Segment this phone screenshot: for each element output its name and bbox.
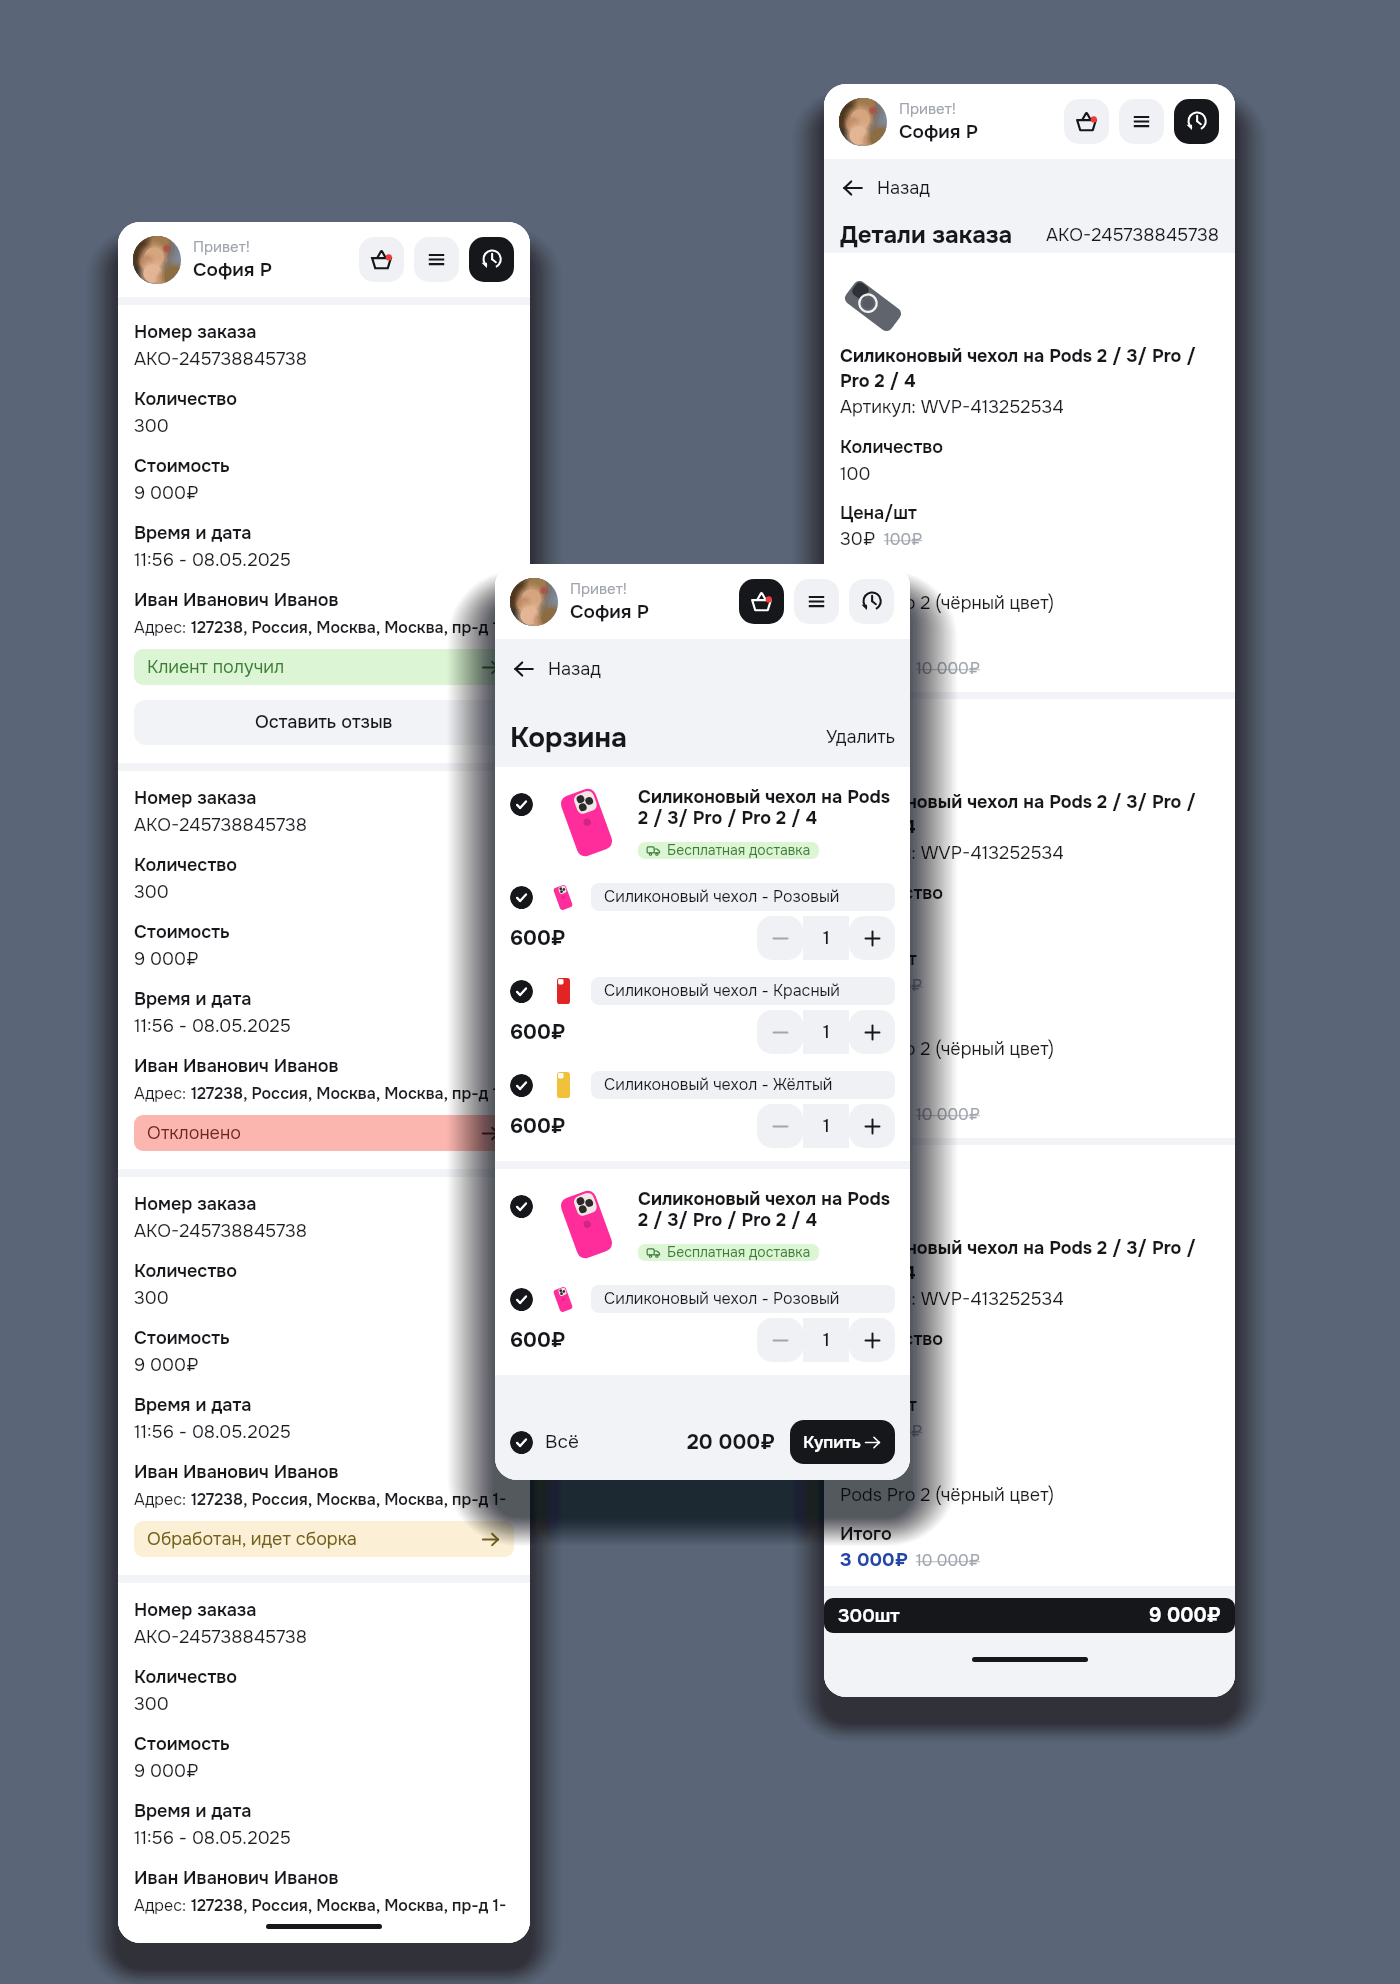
button[interactable]: Меню	[414, 237, 459, 282]
staticText: 10 000₽	[916, 1100, 980, 1126]
staticText: Цена/шт	[840, 1391, 917, 1417]
button[interactable]: Силиконовый чехол - Красный	[591, 977, 895, 1005]
staticText: Количество	[840, 878, 944, 905]
button[interactable]: Увеличить	[849, 1104, 895, 1148]
button[interactable]: Выбрать	[510, 980, 533, 1003]
staticText: Номер заказа	[134, 317, 257, 344]
button[interactable]: Меню	[1119, 99, 1164, 144]
staticText: 127238, Россия, Москва, Москва, пр-д 1-й…	[191, 1890, 514, 1917]
staticText: Силиконовый чехол - Красный	[604, 981, 840, 1001]
staticText: Силиконовый чехол на Pods 2 / 3/ Pro / P…	[840, 343, 1219, 393]
staticText: 10 000₽	[916, 1546, 980, 1572]
staticText: 11:56 - 08.05.2025	[134, 1417, 291, 1444]
staticText: 100	[840, 1351, 871, 1378]
button[interactable]: История	[1174, 99, 1219, 144]
staticText: Время и дата	[134, 1390, 252, 1417]
staticText: Количество	[840, 1324, 944, 1351]
staticText: Силиконовый чехол - Розовый	[604, 887, 840, 907]
staticText: Адрес:	[134, 1078, 191, 1105]
staticText: 30₽	[840, 971, 876, 997]
staticText: 300	[134, 411, 169, 438]
button[interactable]: Купить	[790, 1420, 895, 1464]
staticText: София Р	[193, 257, 272, 282]
staticText: Силиконовый чехол на Pods 2 / 3/ Pro / P…	[638, 1189, 895, 1231]
button[interactable]: Уменьшить	[757, 916, 803, 960]
staticText: Бесплатная доставка	[667, 842, 811, 859]
staticText: 3 000₽	[840, 1546, 908, 1572]
staticText: Стоимость	[134, 1729, 230, 1756]
staticText: 300	[134, 1283, 169, 1310]
staticText: AKO-245738845738	[134, 1216, 308, 1243]
staticText: 600₽	[510, 1327, 566, 1353]
button[interactable]: Обработан, идет сборка	[134, 1521, 514, 1557]
button[interactable]: Отклонено	[134, 1115, 514, 1151]
staticText: Силиконовый чехол на Pods 2 / 3/ Pro / P…	[840, 1235, 1219, 1285]
button[interactable]: Силиконовый чехол - Розовый	[591, 883, 895, 911]
staticText: Иван Иванович Иванов	[134, 585, 339, 612]
staticText: Артикул: WVP-413252534	[840, 839, 1064, 865]
button[interactable]: Увеличить	[849, 916, 895, 960]
staticText: 9 000₽	[134, 1756, 199, 1783]
button[interactable]: Клиент получил	[134, 649, 514, 685]
button[interactable]: Меню	[794, 579, 839, 624]
button[interactable]: Увеличить	[849, 1318, 895, 1362]
staticText: Количество	[134, 850, 238, 877]
staticText: 11:56 - 08.05.2025	[134, 545, 291, 572]
button[interactable]: Корзина	[359, 237, 404, 282]
button[interactable]: Корзина	[739, 579, 784, 624]
staticText: Детали заказа	[840, 220, 1013, 250]
staticText: 127238, Россия, Москва, Москва, пр-д 1-й…	[191, 612, 514, 639]
button[interactable]: Назад	[495, 639, 910, 699]
staticText: Адрес:	[134, 1890, 191, 1917]
staticText: 1	[823, 1329, 830, 1352]
button[interactable]: 300шт	[824, 1598, 1235, 1633]
button[interactable]: Назад	[824, 159, 1235, 217]
button[interactable]: Выбрать	[510, 1195, 533, 1218]
button[interactable]: История	[849, 579, 894, 624]
staticText: Силиконовый чехол на Pods 2 / 3/ Pro / P…	[840, 789, 1219, 839]
staticText: Количество	[134, 384, 238, 411]
staticText: Артикул: WVP-413252534	[840, 1285, 1064, 1311]
staticText: София Р	[570, 599, 649, 624]
staticText: 9 000₽	[134, 1350, 199, 1377]
button[interactable]: Выбрать	[510, 793, 533, 816]
staticText: 30₽	[840, 1417, 876, 1443]
staticText: Итого	[840, 628, 892, 654]
staticText: Количество	[134, 1256, 238, 1283]
staticText: 1	[823, 1115, 830, 1138]
button[interactable]: Уменьшить	[757, 1104, 803, 1148]
button[interactable]: Выбрать	[510, 1288, 533, 1311]
button[interactable]: Силиконовый чехол - Розовый	[591, 1285, 895, 1313]
button[interactable]: Корзина	[1064, 99, 1109, 144]
staticText: AKO-245738845738	[134, 1622, 308, 1649]
staticText: 1	[823, 1021, 830, 1044]
staticText: 11:56 - 08.05.2025	[134, 1823, 291, 1850]
staticText: Оставить отзыв	[255, 711, 393, 734]
staticText: Pods Pro 2 (чёрный цвет)	[840, 1481, 1055, 1507]
staticText: 9 000₽	[134, 478, 199, 505]
button[interactable]: Выбрать	[510, 1431, 533, 1454]
button[interactable]: Удалить	[826, 726, 895, 749]
staticText: София Р	[899, 119, 978, 144]
button[interactable]: История	[469, 237, 514, 282]
button[interactable]: Уменьшить	[757, 1010, 803, 1054]
staticText: Итого	[840, 1520, 892, 1546]
button[interactable]: Выбрать	[510, 886, 533, 909]
staticText: 20 000₽	[687, 1429, 775, 1455]
staticText: 3 000₽	[840, 1100, 908, 1126]
staticText: 10 000₽	[916, 654, 980, 680]
staticText: Удалить	[826, 726, 895, 749]
button[interactable]: Увеличить	[849, 1010, 895, 1054]
staticText: 11:56 - 08.05.2025	[134, 1011, 291, 1038]
staticText: Корзина	[510, 720, 627, 755]
button[interactable]: Оставить отзыв	[134, 700, 514, 745]
button[interactable]: Выбрать	[510, 1074, 533, 1097]
staticText: Силиконовый чехол на Pods 2 / 3/ Pro / P…	[638, 787, 895, 829]
staticText: 9 000₽	[134, 944, 199, 971]
staticText: Силиконовый чехол - Жёлтый	[604, 1075, 833, 1095]
button[interactable]: Силиконовый чехол - Жёлтый	[591, 1071, 895, 1099]
button[interactable]: Уменьшить	[757, 1318, 803, 1362]
staticText: 100	[840, 459, 871, 486]
staticText: 100	[840, 905, 871, 932]
